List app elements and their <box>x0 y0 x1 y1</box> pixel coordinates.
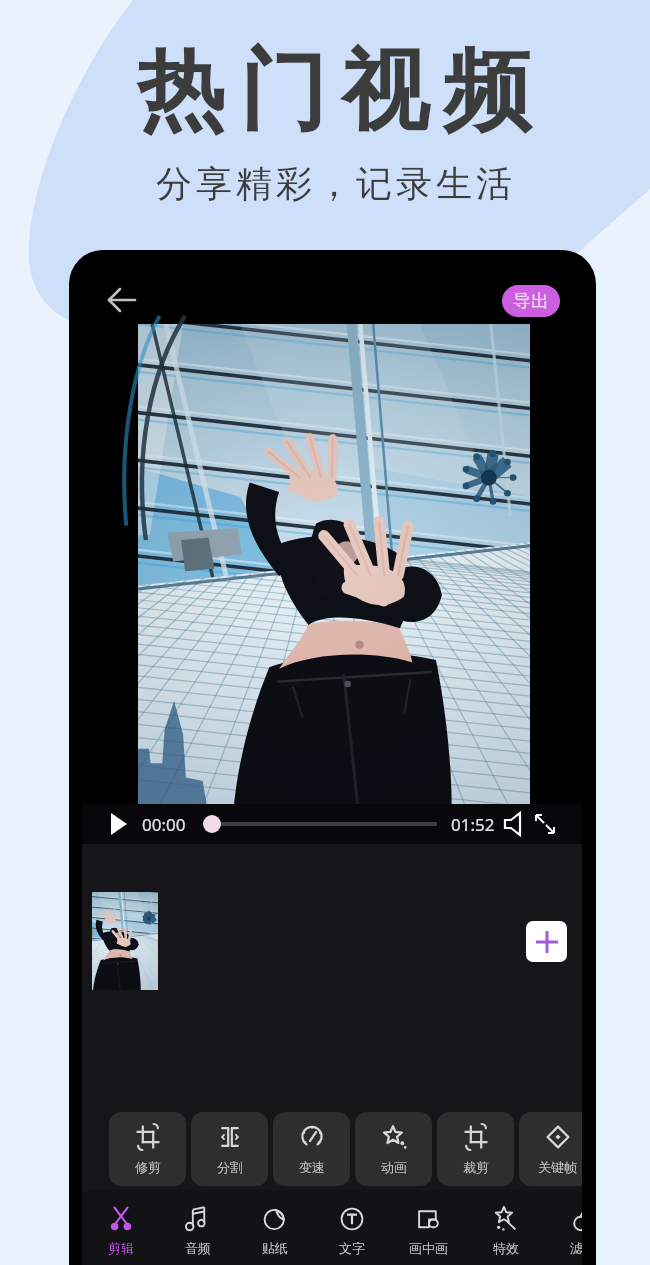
staticText: 特效 <box>493 1240 519 1256</box>
staticText: 00:00 <box>142 813 186 836</box>
staticText: 分享精彩，记录生活 <box>154 161 514 206</box>
staticText: 裁剪 <box>463 1159 489 1175</box>
button[interactable]: Add clip <box>526 921 567 962</box>
staticText: 画中画 <box>409 1240 448 1256</box>
staticText: 修剪 <box>135 1159 161 1175</box>
staticText: 变速 <box>299 1159 325 1175</box>
button[interactable]: 剪辑 <box>82 1206 159 1262</box>
button[interactable]: 分割 <box>191 1112 268 1186</box>
staticText: 关键帧 <box>538 1159 577 1175</box>
button[interactable]: Fullscreen <box>534 813 556 835</box>
button[interactable]: Volume <box>503 813 525 835</box>
staticText: 导出 <box>513 290 549 313</box>
button[interactable]: Back <box>102 280 142 320</box>
button[interactable]: 音频 <box>159 1206 236 1262</box>
staticText: 滤镜 <box>570 1240 582 1256</box>
button[interactable]: 关键帧 <box>519 1112 582 1186</box>
staticText: 01:52 <box>451 813 495 836</box>
button[interactable]: 动画 <box>355 1112 432 1186</box>
button[interactable]: 文字 <box>313 1206 390 1262</box>
staticText: 动画 <box>381 1159 407 1175</box>
button[interactable]: 导出 <box>502 285 560 317</box>
staticText: 分割 <box>217 1159 243 1175</box>
staticText: 热门视频 <box>130 36 538 147</box>
button[interactable]: 特效 <box>467 1206 544 1262</box>
staticText: 剪辑 <box>108 1240 134 1256</box>
button[interactable]: 滤镜 <box>544 1206 582 1262</box>
button[interactable]: 裁剪 <box>437 1112 514 1186</box>
staticText: 音频 <box>185 1240 211 1256</box>
button[interactable]: Play <box>104 810 132 838</box>
button[interactable]: 修剪 <box>109 1112 186 1186</box>
button[interactable]: 变速 <box>273 1112 350 1186</box>
staticText: 贴纸 <box>262 1240 288 1256</box>
button[interactable] <box>92 892 158 990</box>
staticText: 文字 <box>339 1240 365 1256</box>
button[interactable]: 贴纸 <box>236 1206 313 1262</box>
button[interactable]: 画中画 <box>390 1206 467 1262</box>
